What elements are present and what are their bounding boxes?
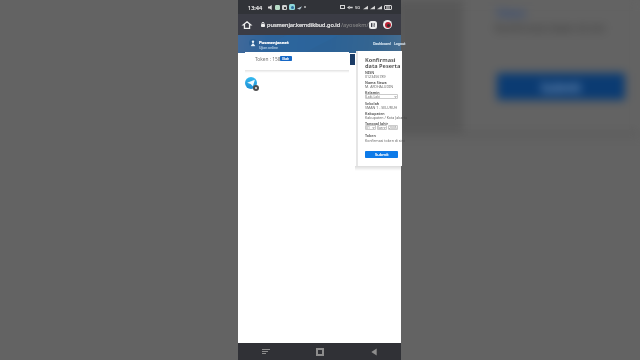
staticText: 80 bbox=[386, 5, 391, 10]
staticText: Token : 158771 bbox=[255, 56, 289, 63]
staticText: 01 bbox=[366, 125, 370, 130]
button[interactable]: 01 bbox=[365, 125, 376, 130]
staticText: data Peserta bbox=[365, 62, 401, 70]
button[interactable]: Back bbox=[347, 343, 401, 360]
button[interactable]: Telegram bbox=[245, 77, 257, 89]
staticText: Nama Siswa bbox=[365, 80, 387, 85]
staticText: Logout bbox=[394, 41, 406, 46]
staticText: Tanggal lahir bbox=[365, 121, 389, 126]
button[interactable]: Recents bbox=[238, 343, 293, 360]
staticText: 13:44 bbox=[248, 4, 263, 11]
button[interactable]: Submit bbox=[365, 151, 398, 158]
staticText: Konfirmasi bbox=[365, 56, 396, 64]
staticText: Kabupaten / Kota Jakarta Selatan bbox=[365, 115, 409, 120]
staticText: Submit bbox=[541, 79, 582, 95]
button[interactable]: Ubah bbox=[280, 56, 292, 61]
staticText: Token bbox=[496, 6, 526, 20]
button[interactable]: Pusmenjar logo bbox=[249, 39, 257, 47]
staticText: Submit bbox=[375, 152, 389, 157]
staticText: /ayosekm/ bbox=[341, 21, 369, 29]
staticText: Ubah bbox=[282, 57, 290, 61]
button[interactable]: Tabs bbox=[366, 18, 379, 31]
staticText: Jan bbox=[378, 125, 383, 130]
staticText: Token bbox=[365, 133, 376, 138]
staticText: Kelamin bbox=[365, 90, 380, 95]
staticText: Sekolah bbox=[365, 101, 380, 106]
staticText: 8 bbox=[372, 22, 375, 28]
staticText: Kabupaten bbox=[365, 111, 385, 116]
button[interactable]: Laki-Laki bbox=[365, 94, 398, 99]
staticText: 2005 bbox=[389, 125, 397, 130]
staticText: SMAN 1 - SELURUH PESERTA ID bbox=[365, 105, 409, 110]
staticText: 5G bbox=[355, 5, 361, 10]
button[interactable]: More options bbox=[381, 18, 394, 31]
staticText: Konfirmasi token di sini bbox=[365, 138, 405, 143]
staticText: pusmenjar.kemdikbud.go.id bbox=[267, 21, 341, 29]
staticText: 0123456789 bbox=[365, 74, 386, 79]
button[interactable]: Jan bbox=[377, 125, 387, 130]
button[interactable]: Options bbox=[253, 85, 259, 91]
button[interactable]: 2005 bbox=[388, 125, 398, 130]
button[interactable]: Dashboard bbox=[373, 41, 391, 46]
staticText: NISN bbox=[365, 70, 375, 75]
staticText: Pusmenjar.net bbox=[259, 40, 289, 46]
button[interactable]: Home bbox=[293, 343, 347, 360]
staticText: Dashboard bbox=[373, 41, 391, 46]
button[interactable]: Logout bbox=[394, 41, 406, 46]
staticText: M. AFDHALUDIN ANNAJAH bbox=[365, 84, 409, 89]
staticText: Ujian online bbox=[259, 45, 279, 50]
staticText: Laki-Laki bbox=[366, 94, 380, 99]
button[interactable]: Home bbox=[240, 18, 253, 31]
